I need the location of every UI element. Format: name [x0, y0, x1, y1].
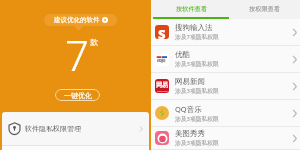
button[interactable]: 一键优化	[55, 89, 100, 101]
staticText: 美图秀秀	[175, 129, 205, 138]
staticText: 网易新闻	[175, 77, 205, 86]
staticText: QQ音乐	[175, 104, 202, 114]
button[interactable]: 网易	[151, 73, 300, 100]
staticText: 优酷	[157, 58, 166, 63]
button[interactable]: 美图秀秀	[151, 127, 300, 150]
staticText: 涉及7项隐私权限	[175, 33, 219, 41]
staticText: 涉及3项隐私权限	[175, 115, 219, 123]
staticText: 按权限查看	[249, 5, 280, 13]
staticText: 涉及3项隐私权限	[175, 60, 219, 68]
staticText: 款	[90, 37, 98, 47]
button[interactable]: 软件隐私权限管理	[2, 112, 149, 145]
staticText: 7	[65, 26, 89, 83]
staticText: 涉及3项隐私权限	[175, 87, 219, 95]
staticText: 涉及3项隐私权限	[175, 139, 219, 147]
staticText: S	[158, 25, 166, 39]
button[interactable]: QQ音乐	[151, 100, 300, 127]
staticText: 网易	[156, 81, 168, 89]
button[interactable]: 建议优化的软件	[44, 14, 117, 26]
button[interactable]: 按软件查看	[153, 0, 229, 19]
staticText: 优酷	[175, 50, 190, 59]
staticText: NETEASE	[157, 89, 168, 92]
staticText: 建议优化的软件	[54, 16, 100, 24]
staticText: 搜狗输入法	[175, 23, 213, 32]
staticText: 按软件查看	[176, 5, 207, 13]
button[interactable]: S	[151, 19, 300, 46]
button[interactable]: 优酷	[151, 46, 300, 73]
staticText: 一键优化	[64, 91, 92, 100]
button[interactable]: 按权限查看	[229, 0, 300, 19]
staticText: 软件隐私权限管理	[25, 124, 81, 133]
